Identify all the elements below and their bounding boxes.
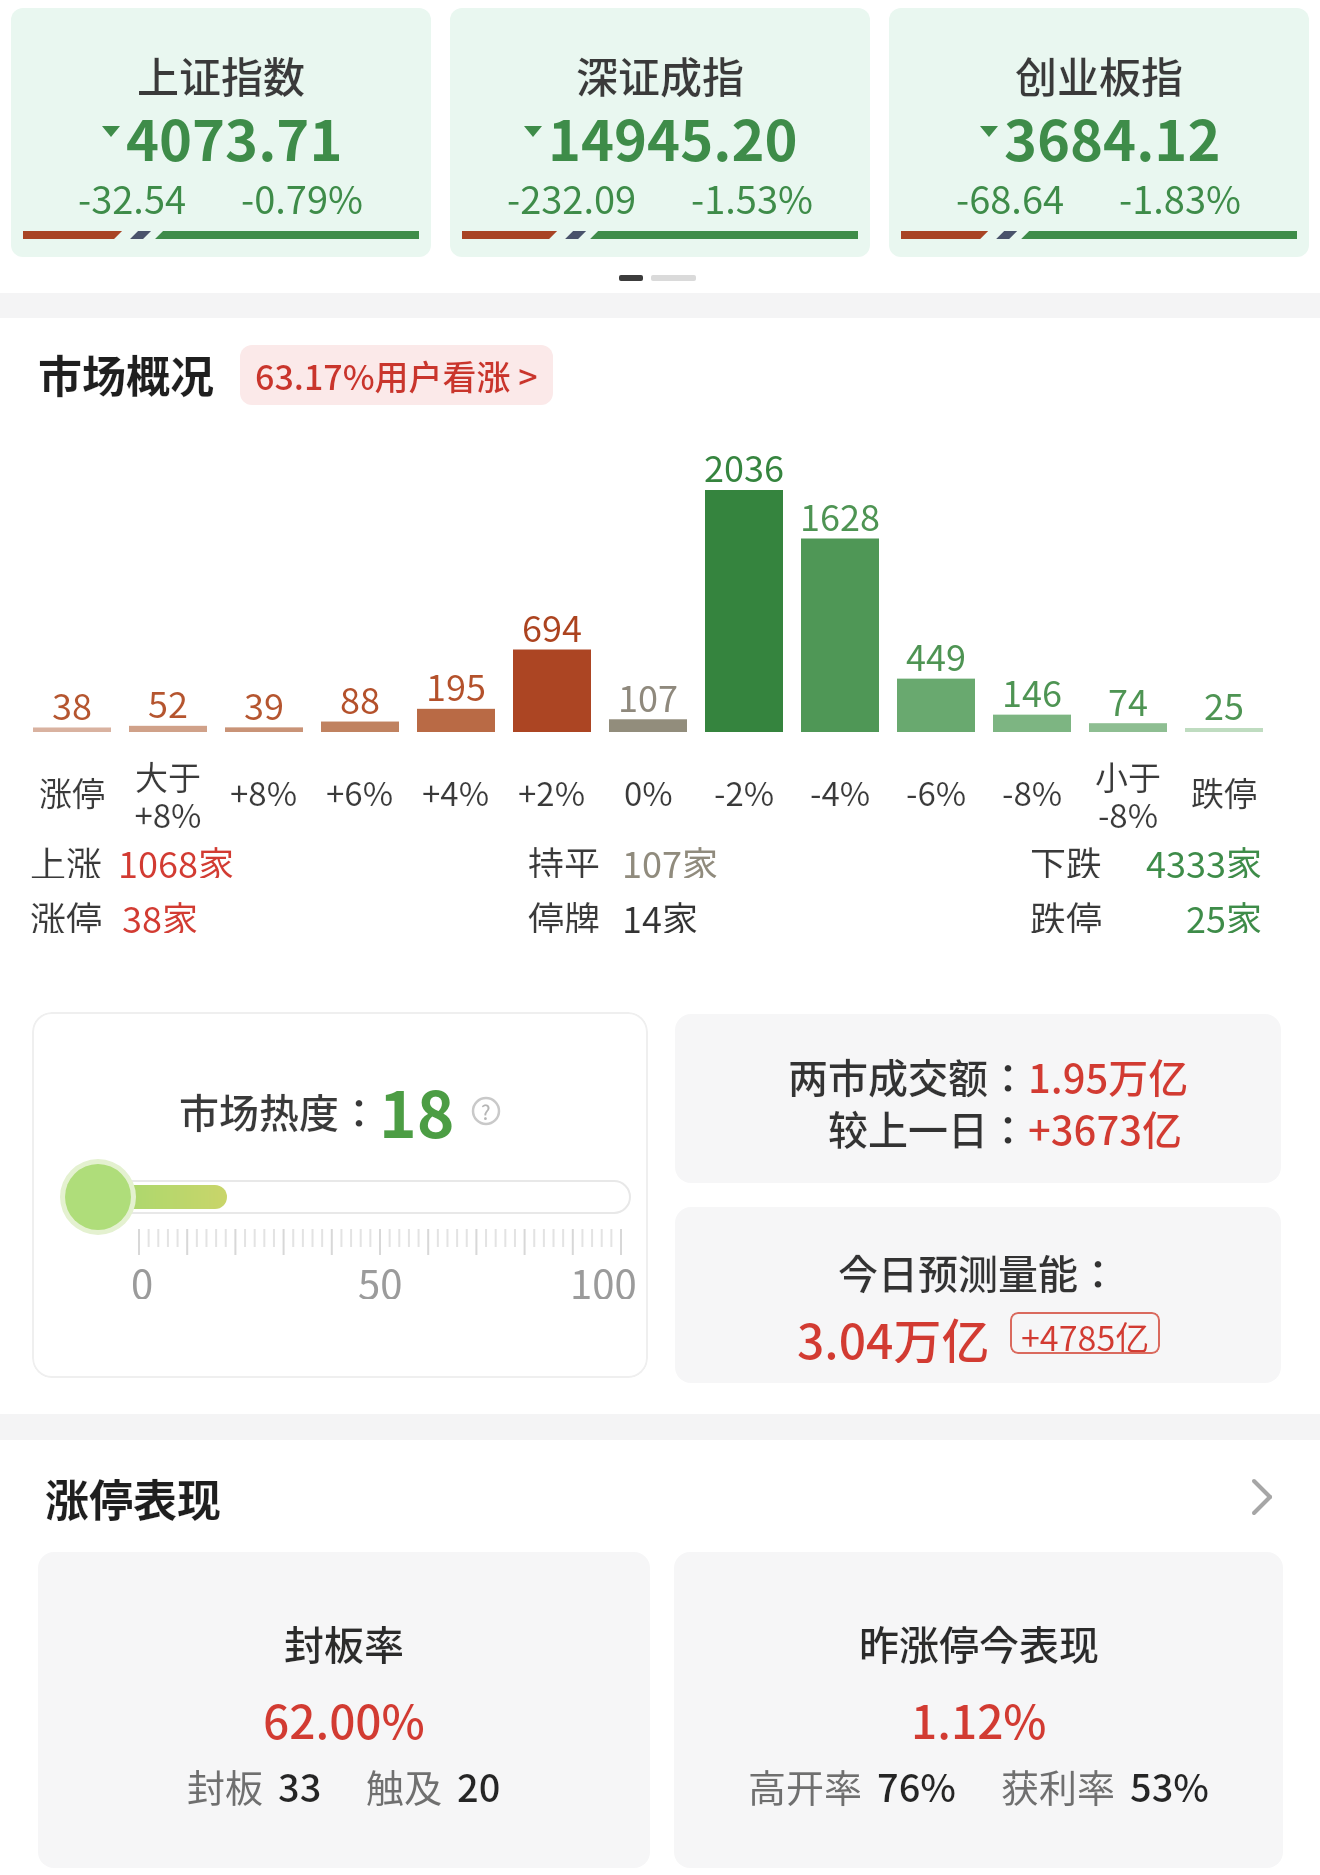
staticText: 38家 xyxy=(122,891,198,933)
staticText: 4333家 xyxy=(1146,836,1262,878)
staticText: 107 xyxy=(618,670,678,712)
button[interactable]: 今日预测量能： xyxy=(675,1207,1281,1383)
staticText: +6% xyxy=(326,768,394,814)
staticText: 146 xyxy=(1002,665,1062,707)
staticText: 50 xyxy=(358,1253,403,1299)
staticText: 小于 -8% xyxy=(1095,752,1161,832)
button[interactable]: 创业板指 xyxy=(889,8,1309,257)
staticText: 14家 xyxy=(622,891,698,933)
staticText: 38 xyxy=(52,678,92,720)
staticText: 停牌 xyxy=(528,891,601,933)
staticText: -4% xyxy=(810,768,871,814)
staticText: 1.12% xyxy=(911,1686,1047,1740)
staticText: -1.83% xyxy=(1119,170,1242,218)
button[interactable]: 两市成交额： xyxy=(675,1014,1281,1183)
staticText: 449 xyxy=(906,629,966,671)
staticText: 触及 xyxy=(366,1758,443,1808)
button[interactable] xyxy=(1248,1479,1276,1515)
staticText: 涨停表现 xyxy=(45,1466,221,1528)
staticText: 18 xyxy=(379,1064,455,1157)
staticText: 封板率 xyxy=(284,1614,404,1664)
staticText: -2% xyxy=(714,768,775,814)
staticText: 62.00% xyxy=(263,1686,425,1740)
staticText: +4% xyxy=(422,768,490,814)
staticText: 涨停 xyxy=(39,768,105,814)
staticText: 694 xyxy=(522,600,582,642)
button[interactable]: 市场热度： xyxy=(32,1012,648,1378)
staticText: 下跌 xyxy=(1030,836,1103,878)
staticText: +4785亿 xyxy=(1021,1312,1150,1354)
staticText: 上证指数 xyxy=(137,44,306,100)
staticText: 4073.71 xyxy=(126,96,343,166)
staticText: 涨停 xyxy=(30,891,103,933)
staticText: 0 xyxy=(131,1253,154,1299)
staticText: 14945.20 xyxy=(548,96,798,166)
staticText: 创业板指 xyxy=(1015,44,1184,100)
staticText: 1.95万亿 xyxy=(1028,1047,1189,1099)
staticText: +3673亿 xyxy=(1028,1099,1182,1151)
staticText: -32.54 xyxy=(78,170,187,218)
staticText: 100 xyxy=(570,1253,637,1299)
button[interactable]: 昨涨停今表现 xyxy=(674,1552,1283,1868)
staticText: 76% xyxy=(877,1758,957,1808)
staticText: 52 xyxy=(148,676,188,718)
staticText: 跌停 xyxy=(1030,891,1103,933)
staticText: 25家 xyxy=(1186,891,1262,933)
staticText: 深证成指 xyxy=(576,44,745,100)
staticText: 74 xyxy=(1108,674,1148,716)
staticText: 较上一日： xyxy=(828,1099,1028,1151)
staticText: 高开率 xyxy=(748,1758,863,1808)
staticText: 跌停 xyxy=(1191,768,1257,814)
button[interactable]: 深证成指 xyxy=(450,8,870,257)
staticText: 63.17%用户看涨 > xyxy=(255,351,538,400)
staticText: 两市成交额： xyxy=(788,1047,1028,1099)
staticText: -6% xyxy=(906,768,967,814)
staticText: 88 xyxy=(340,672,380,714)
staticText: 上涨 xyxy=(30,836,103,878)
staticText: -232.09 xyxy=(507,170,637,218)
staticText: 195 xyxy=(426,659,486,701)
staticText: 今日预测量能： xyxy=(838,1243,1118,1295)
button[interactable]: 封板率 xyxy=(38,1552,650,1868)
staticText: 获利率 xyxy=(1001,1758,1116,1808)
staticText: 1068家 xyxy=(118,836,234,878)
button[interactable]: 63.17%用户看涨 > xyxy=(240,345,553,405)
staticText: -68.64 xyxy=(956,170,1065,218)
staticText: 封板 xyxy=(187,1758,264,1808)
staticText: 市场热度： xyxy=(179,1082,379,1140)
staticText: 市场概况 xyxy=(38,342,214,404)
staticText: 25 xyxy=(1204,678,1244,720)
staticText: 1628 xyxy=(800,489,880,531)
staticText: 0% xyxy=(624,768,673,814)
staticText: -0.79% xyxy=(241,170,364,218)
staticText: 33 xyxy=(278,1758,322,1808)
staticText: 20 xyxy=(457,1758,501,1808)
staticText: 2036 xyxy=(704,440,784,482)
staticText: -8% xyxy=(1002,768,1063,814)
staticText: +2% xyxy=(518,768,586,814)
staticText: 昨涨停今表现 xyxy=(859,1614,1099,1664)
staticText: ? xyxy=(481,1097,491,1126)
button[interactable]: 上证指数 xyxy=(11,8,431,257)
staticText: 3684.12 xyxy=(1004,96,1221,166)
staticText: +8% xyxy=(230,768,298,814)
staticText: 53% xyxy=(1130,1758,1210,1808)
staticText: 持平 xyxy=(528,836,601,878)
staticText: 39 xyxy=(244,678,284,720)
staticText: 107家 xyxy=(622,836,718,878)
staticText: 3.04万亿 xyxy=(797,1303,990,1363)
staticText: -1.53% xyxy=(691,170,814,218)
staticText: 大于 +8% xyxy=(134,752,202,832)
